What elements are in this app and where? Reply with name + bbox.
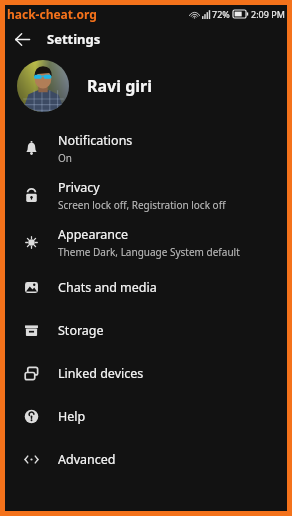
staticText: Privacy: [58, 179, 100, 196]
button[interactable]: Privacy: [5, 172, 287, 219]
button[interactable]: Ravi giri: [5, 55, 287, 117]
staticText: Settings: [47, 30, 101, 48]
staticText: Help: [58, 408, 86, 425]
button[interactable]: Chats and media: [5, 266, 287, 309]
button[interactable]: Appearance: [5, 219, 287, 266]
button[interactable]: Notifications: [5, 125, 287, 172]
staticText: Chats and media: [58, 279, 157, 296]
button[interactable]: Advanced: [5, 438, 287, 481]
staticText: On: [58, 151, 72, 165]
staticText: Storage: [58, 322, 104, 339]
staticText: 2:09 PM: [251, 8, 285, 20]
staticText: Theme Dark, Language System default: [58, 245, 240, 259]
button[interactable]: Linked devices: [5, 352, 287, 395]
staticText: Screen lock off, Registration lock off: [58, 198, 226, 212]
staticText: Advanced: [58, 451, 116, 468]
staticText: hack-cheat.org: [7, 6, 97, 22]
button[interactable]: Back: [5, 23, 39, 55]
staticText: Ravi giri: [87, 75, 152, 97]
button[interactable]: Help: [5, 395, 287, 438]
staticText: Notifications: [58, 132, 133, 149]
staticText: 72%: [212, 8, 230, 20]
staticText: Linked devices: [58, 365, 144, 382]
button[interactable]: Storage: [5, 309, 287, 352]
staticText: Appearance: [58, 226, 129, 243]
